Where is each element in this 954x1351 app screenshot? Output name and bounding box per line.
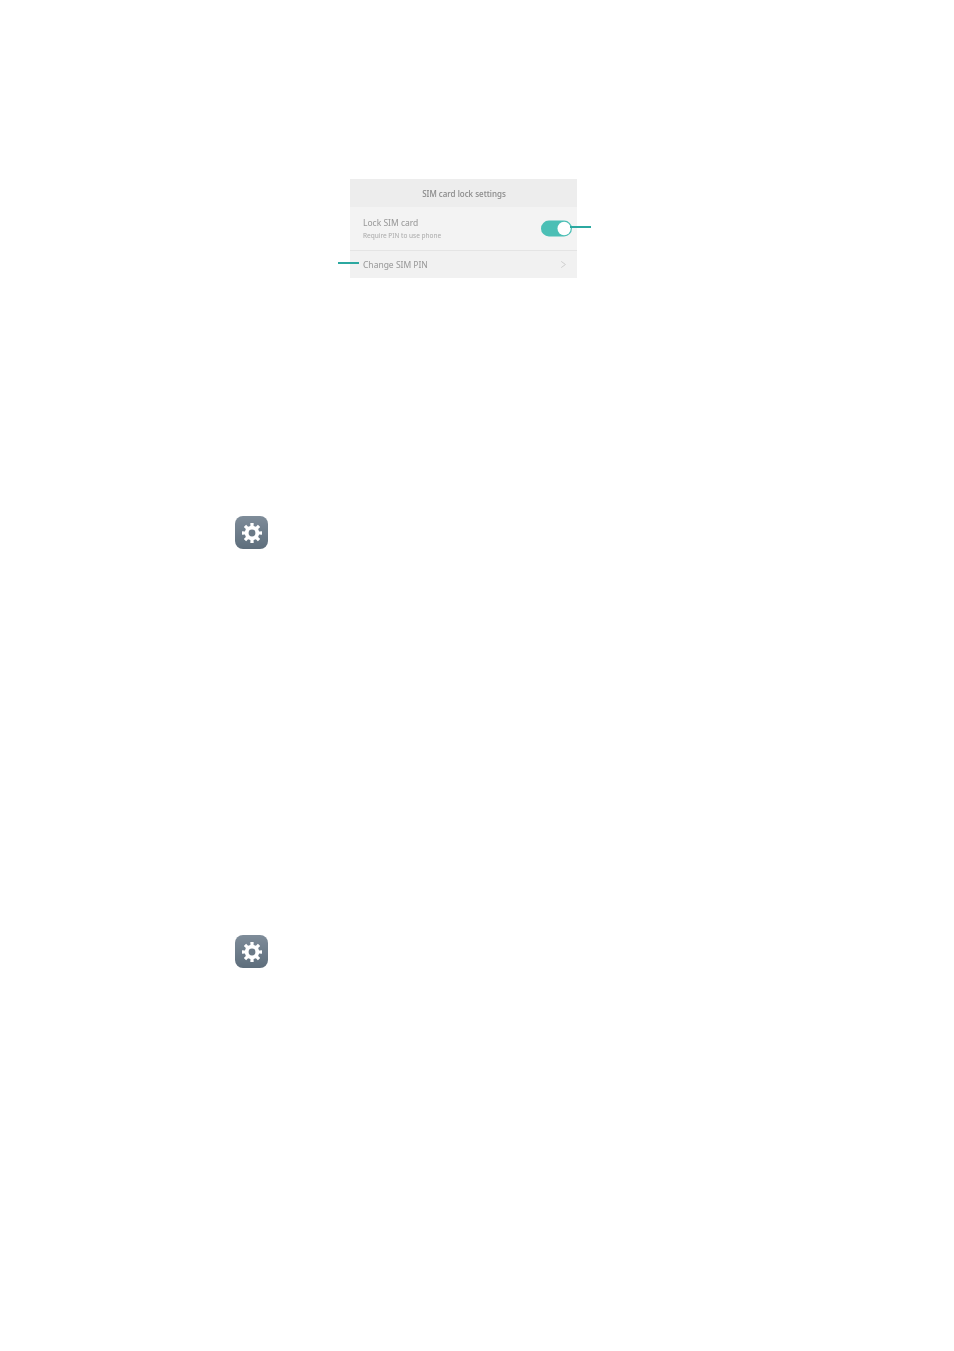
button[interactable]: Change SIM PIN <box>350 251 577 278</box>
button[interactable]: Lock SIM card <box>350 207 577 250</box>
button[interactable]: Settings <box>235 516 268 549</box>
staticText: SIM card lock settings <box>422 188 506 199</box>
button[interactable]: Lock SIM card toggle, on <box>541 220 572 237</box>
staticText: Lock SIM card <box>363 217 419 229</box>
staticText: Require PIN to use phone <box>363 231 442 240</box>
button[interactable]: Settings <box>235 935 268 968</box>
staticText: Change SIM PIN <box>363 259 428 271</box>
